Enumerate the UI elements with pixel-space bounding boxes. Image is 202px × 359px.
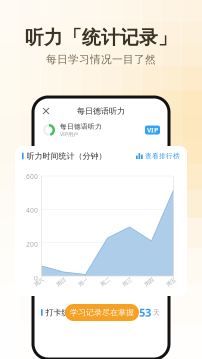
- staticText: 学习记录尽在掌握: [70, 308, 134, 317]
- button[interactable]: 查看排行榜: [136, 152, 180, 160]
- staticText: 听力「统计记录」: [25, 26, 177, 49]
- staticText: 周三: [122, 279, 132, 286]
- staticText: 打卡统计: [46, 308, 78, 317]
- staticText: 周一: [78, 279, 88, 286]
- button[interactable]: 关闭: [40, 105, 52, 117]
- staticText: 每日德语听力: [60, 122, 102, 131]
- staticText: 0: [34, 274, 38, 282]
- staticText: 查看排行榜: [145, 152, 180, 160]
- button[interactable]: 学习记录尽在掌握: [65, 304, 139, 321]
- staticText: 周四: [144, 279, 154, 286]
- staticText: VIP: [147, 126, 158, 134]
- staticText: 周二: [100, 279, 110, 286]
- staticText: 周五: [166, 279, 176, 286]
- staticText: 53: [139, 305, 151, 320]
- staticText: 打卡: [123, 308, 137, 317]
- staticText: 周六: [34, 279, 44, 286]
- staticText: VIP用户: [60, 130, 78, 138]
- staticText: 周日: [56, 279, 66, 286]
- staticText: 200: [26, 240, 38, 249]
- staticText: 每日学习情况一目了然: [46, 53, 156, 66]
- staticText: 400: [26, 206, 38, 215]
- staticText: 天: [153, 308, 160, 317]
- staticText: 听力时间统计（分钟）: [27, 151, 107, 161]
- staticText: 每日德语听力: [77, 106, 125, 116]
- button[interactable]: VIP: [145, 125, 160, 134]
- staticText: 600: [26, 172, 38, 181]
